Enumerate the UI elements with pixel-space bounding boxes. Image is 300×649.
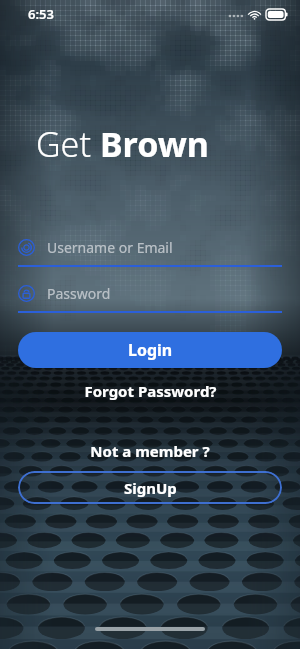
button[interactable]: SignUp	[18, 471, 282, 504]
staticText: Brown	[100, 121, 209, 167]
button[interactable]: Password	[18, 281, 282, 313]
staticText: Forgot Password?	[84, 381, 217, 401]
staticText: Get	[36, 121, 100, 167]
button[interactable]: Forgot Password?	[0, 381, 300, 401]
staticText: SignUp	[124, 478, 177, 498]
button[interactable]: Username or Email	[18, 235, 282, 267]
staticText: Login	[128, 339, 173, 361]
button[interactable]: Login	[18, 332, 282, 368]
staticText: Password	[47, 284, 111, 303]
staticText: Not a member ?	[90, 441, 210, 461]
staticText: 6:53	[28, 5, 54, 23]
staticText: Username or Email	[47, 238, 173, 257]
